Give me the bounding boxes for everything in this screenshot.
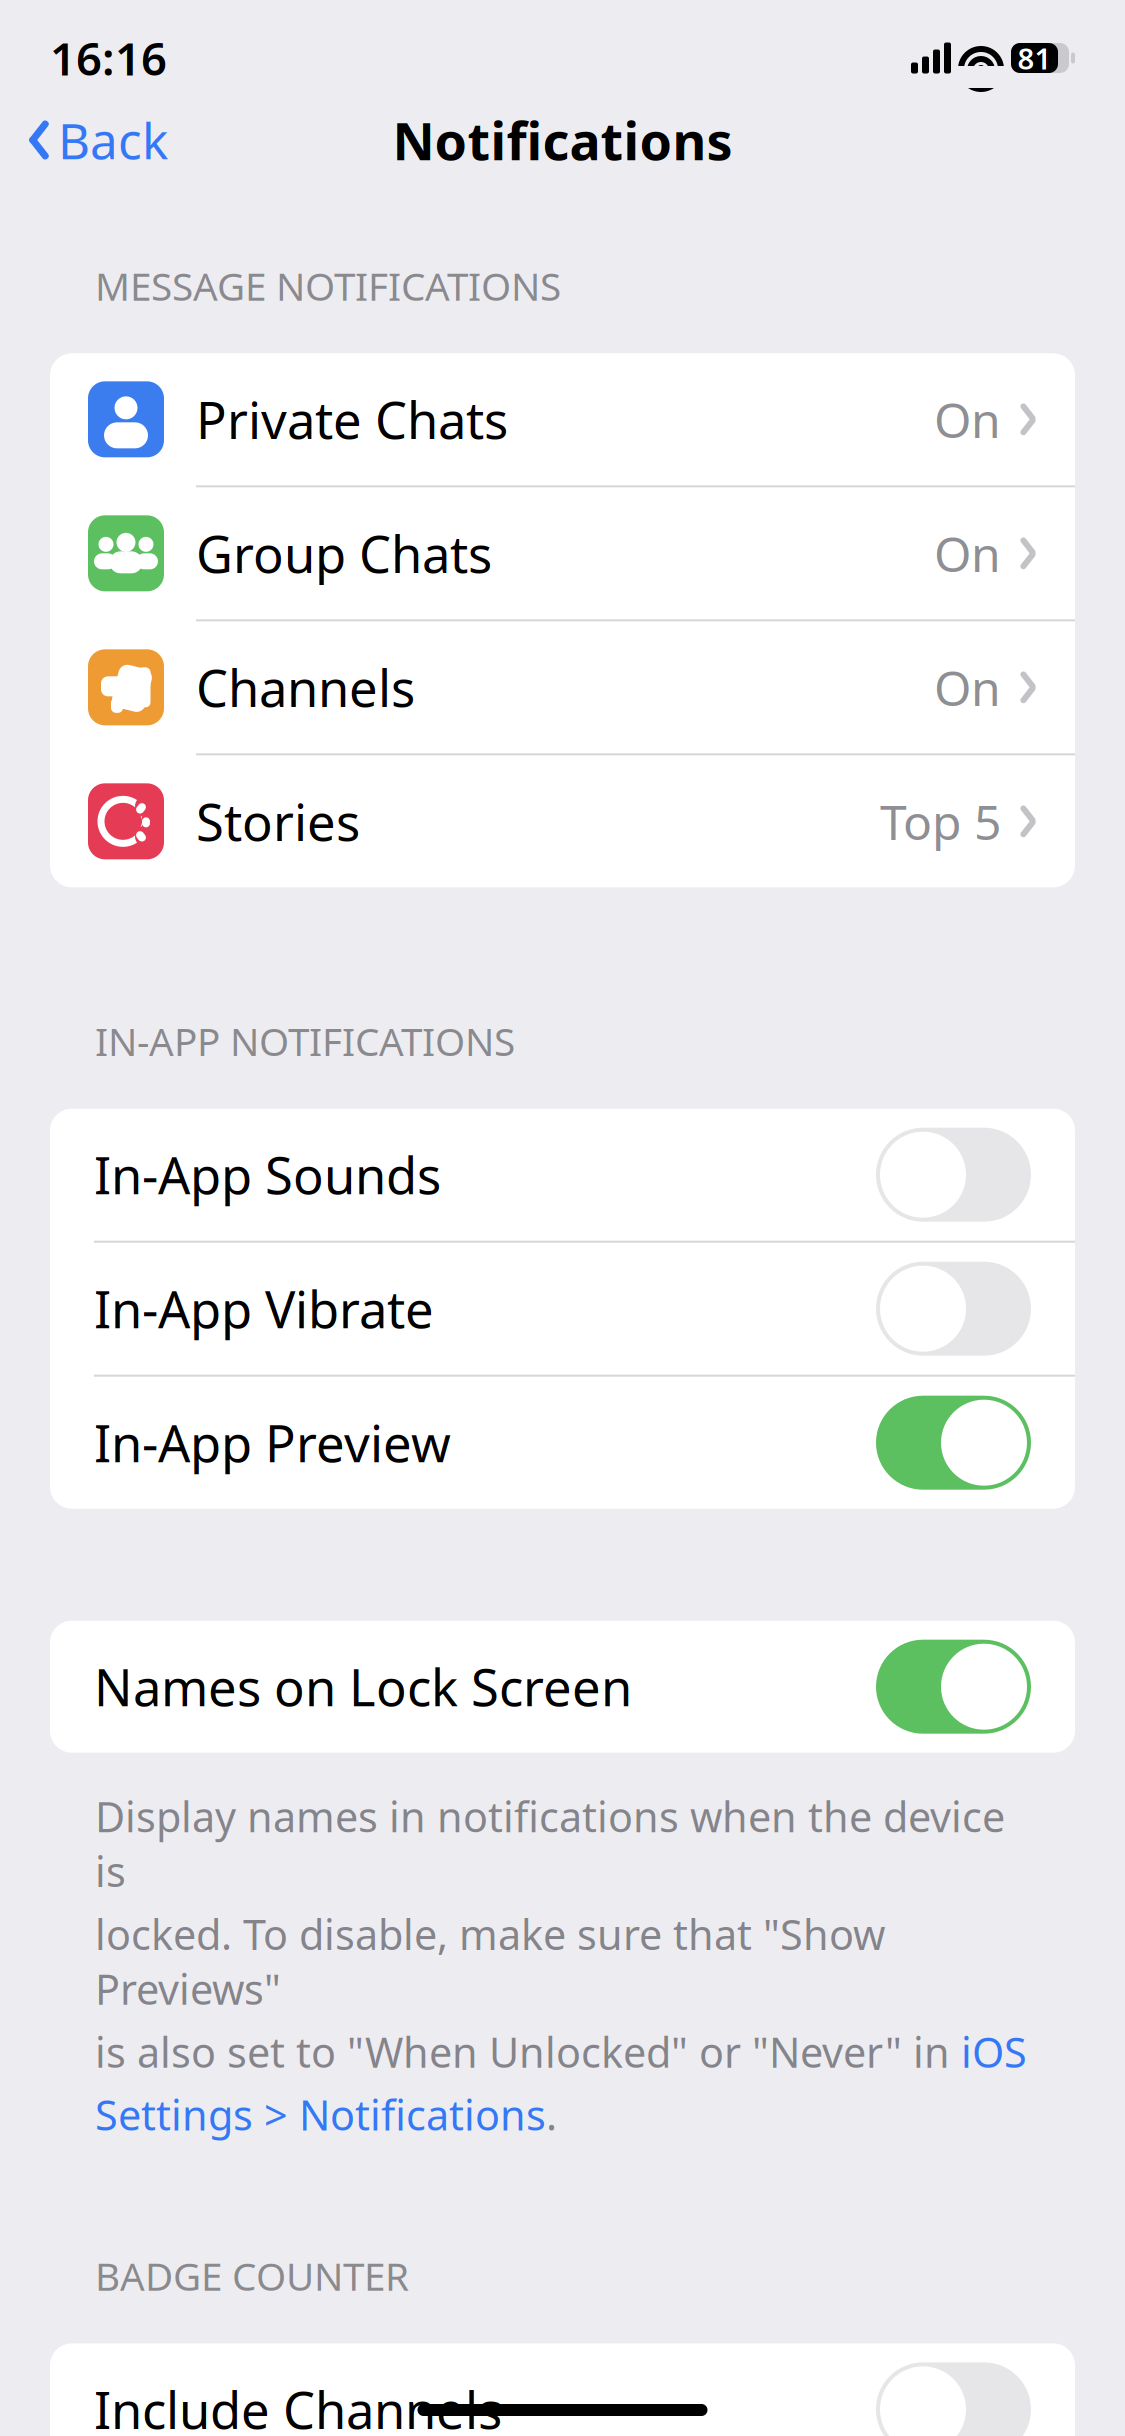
button[interactable]: iOS	[961, 2024, 1027, 2079]
staticText: Top 5	[880, 789, 1001, 853]
button[interactable]: Settings > Notifications	[95, 2087, 546, 2142]
button[interactable]: Include Channels	[50, 2343, 1075, 2436]
staticText: In-App Preview	[94, 1409, 451, 1476]
staticText: Stories	[196, 788, 360, 855]
staticText: Names on Lock Screen	[94, 1653, 632, 1720]
staticText: iOS	[961, 2024, 1027, 2079]
staticText: Include Channels	[94, 2376, 502, 2436]
staticText: In-App Vibrate	[94, 1275, 434, 1342]
staticText: is also set to "When Unlocked" or "Never…	[95, 2024, 961, 2079]
staticText: On	[934, 387, 1001, 451]
staticText: Back	[58, 107, 168, 173]
staticText: On	[934, 521, 1001, 585]
button[interactable]: In-App Vibrate	[50, 1243, 1075, 1375]
staticText: Channels	[196, 654, 415, 721]
staticText: 16:16	[50, 28, 167, 88]
staticText: MESSAGE NOTIFICATIONS	[95, 260, 561, 311]
staticText: 81	[1017, 38, 1051, 77]
staticText: Group Chats	[196, 520, 492, 587]
button[interactable]: In-App Sounds	[50, 1109, 1075, 1241]
staticText: Settings > Notifications	[95, 2087, 546, 2142]
button[interactable]: In-App Preview	[50, 1377, 1075, 1509]
staticText: Display names in notifications when the …	[95, 1789, 1005, 1898]
staticText: Private Chats	[196, 386, 508, 453]
staticText: Notifications	[392, 105, 732, 175]
button[interactable]: Names on Lock Screen	[50, 1621, 1075, 1753]
button[interactable]: Group Chats	[50, 487, 1075, 619]
button[interactable]: Private Chats	[50, 353, 1075, 485]
button[interactable]: Back	[6, 93, 190, 187]
button[interactable]: Channels	[50, 621, 1075, 753]
button[interactable]: Stories	[50, 755, 1075, 887]
staticText: .	[546, 2087, 557, 2142]
staticText: locked. To disable, make sure that "Show…	[95, 1906, 885, 2016]
staticText: In-App Sounds	[94, 1141, 441, 1208]
staticText: BADGE COUNTER	[95, 2250, 409, 2301]
staticText: On	[934, 655, 1001, 719]
staticText: IN-APP NOTIFICATIONS	[95, 1015, 515, 1067]
